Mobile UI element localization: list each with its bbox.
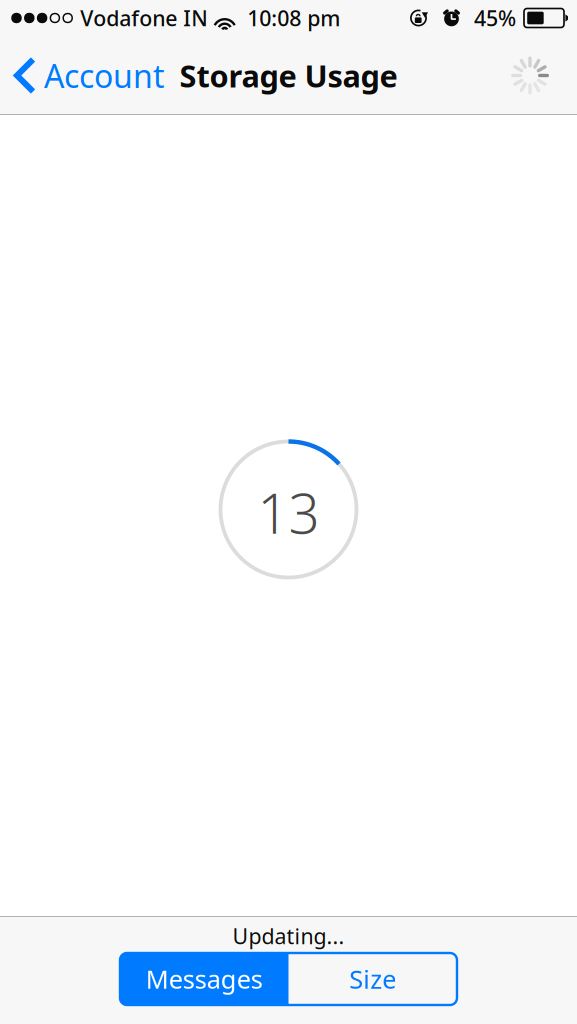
button[interactable]: Loading xyxy=(511,36,577,115)
staticText: 13 xyxy=(257,476,319,549)
staticText: Account xyxy=(44,54,165,97)
staticText: Size xyxy=(349,962,396,996)
staticText: Storage Usage xyxy=(179,55,397,96)
button[interactable]: Messages xyxy=(120,953,288,1005)
button[interactable]: Account xyxy=(0,36,175,115)
staticText: Messages xyxy=(146,962,263,996)
staticText: 45% xyxy=(474,4,516,32)
staticText: Updating... xyxy=(232,922,344,950)
staticText: 10:08 pm xyxy=(247,4,340,32)
staticText: Vodafone IN xyxy=(80,4,208,32)
button[interactable]: Size xyxy=(288,953,457,1005)
